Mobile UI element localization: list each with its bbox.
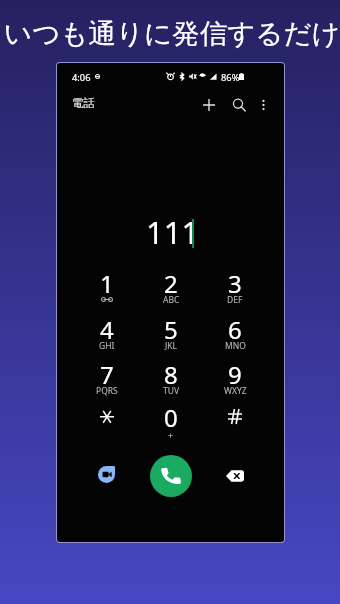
staticText: 電話 bbox=[72, 96, 96, 111]
button[interactable]: 2 bbox=[139, 263, 203, 308]
staticText: 2 bbox=[164, 267, 178, 300]
staticText: 5 bbox=[164, 313, 178, 346]
staticText: PQRS bbox=[96, 385, 118, 397]
staticText: 4:06 bbox=[72, 71, 91, 84]
button[interactable]: 3 bbox=[203, 263, 267, 308]
staticText: WXYZ bbox=[224, 385, 247, 397]
button[interactable]: 9 bbox=[203, 354, 267, 399]
staticText: 4 bbox=[100, 313, 114, 346]
button[interactable] bbox=[75, 397, 139, 442]
button[interactable]: 1 bbox=[75, 263, 139, 308]
staticText: 86% bbox=[221, 71, 240, 84]
button[interactable]: 0 bbox=[139, 397, 203, 442]
staticText: 1 bbox=[100, 267, 114, 300]
button[interactable]: Call bbox=[150, 455, 192, 497]
button[interactable]: 5 bbox=[139, 309, 203, 354]
staticText: 6 bbox=[228, 313, 242, 346]
staticText: 8 bbox=[164, 358, 178, 391]
staticText: 111 bbox=[146, 211, 200, 253]
staticText: DEF bbox=[227, 294, 243, 306]
staticText: 0 bbox=[164, 401, 178, 434]
button[interactable]: 4 bbox=[75, 309, 139, 354]
button[interactable]: Add contact bbox=[196, 92, 222, 118]
staticText: GHI bbox=[99, 340, 115, 352]
button[interactable]: 7 bbox=[75, 354, 139, 399]
staticText: MNO bbox=[225, 340, 246, 352]
button[interactable]: Backspace bbox=[216, 457, 254, 495]
staticText: JKL bbox=[165, 340, 178, 352]
button[interactable]: 8 bbox=[139, 354, 203, 399]
staticText: TUV bbox=[163, 385, 180, 397]
staticText: ABC bbox=[163, 294, 180, 306]
button[interactable]: 6 bbox=[203, 309, 267, 354]
button[interactable]: Search bbox=[226, 92, 252, 118]
staticText: 9 bbox=[228, 358, 242, 391]
staticText: 7 bbox=[100, 358, 114, 391]
staticText: + bbox=[168, 429, 174, 441]
button[interactable] bbox=[203, 397, 267, 442]
button[interactable]: Video call bbox=[87, 456, 125, 494]
staticText: いつも通りに発信するだけ bbox=[4, 17, 340, 52]
staticText: 3 bbox=[228, 267, 242, 300]
button[interactable]: More options bbox=[250, 92, 276, 118]
